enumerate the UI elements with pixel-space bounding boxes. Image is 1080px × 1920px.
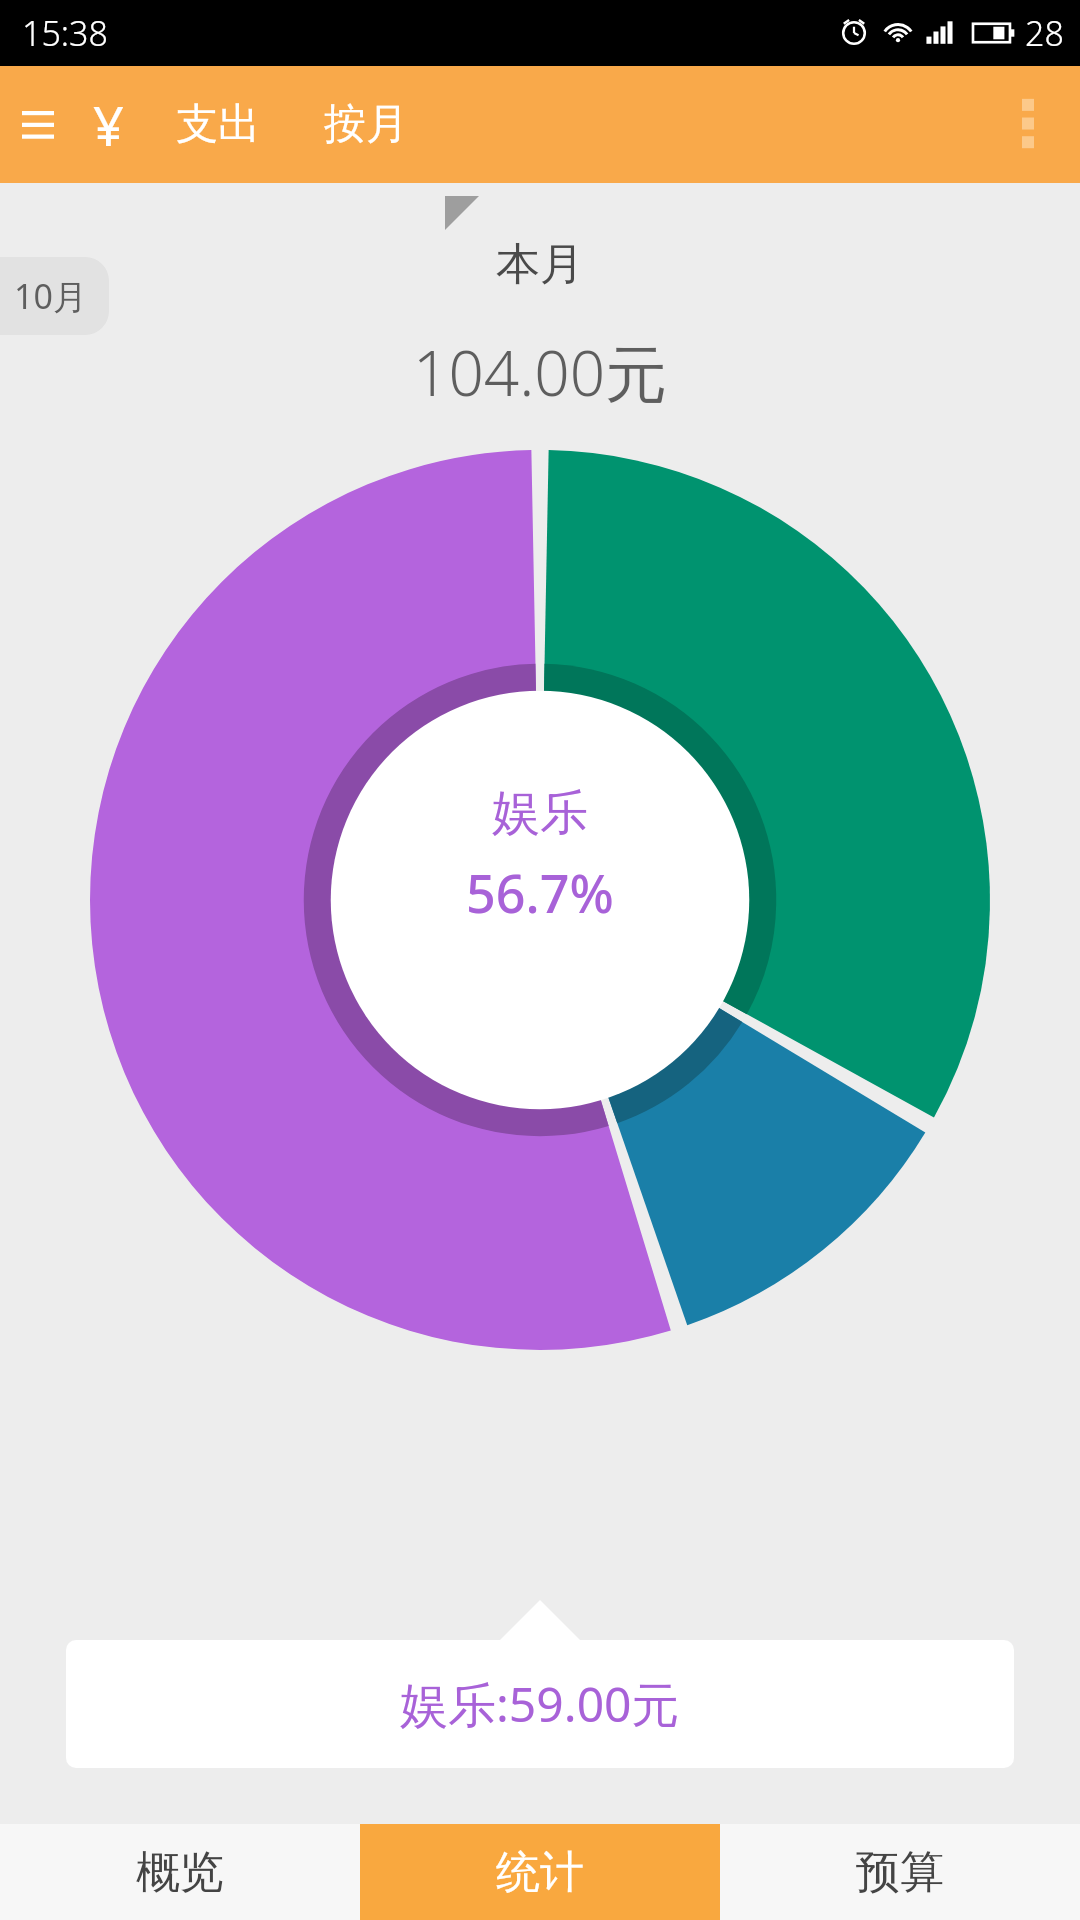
staticText: 娱乐 <box>492 783 588 843</box>
button[interactable]: 10月 <box>0 257 109 335</box>
staticText: 56.7% <box>466 857 614 928</box>
button[interactable]: 统计 <box>360 1824 720 1920</box>
button[interactable]: Currency <box>70 87 146 163</box>
staticText: 28 <box>1025 10 1064 56</box>
staticText: 统计 <box>496 1845 584 1900</box>
staticText: 10月 <box>14 273 87 319</box>
staticText: 104.00元 <box>413 330 668 415</box>
button[interactable]: 预算 <box>720 1824 1080 1920</box>
button[interactable]: 娱乐:59.00元 <box>66 1640 1014 1768</box>
button[interactable]: More options <box>992 89 1064 161</box>
staticText: 预算 <box>856 1845 944 1900</box>
button[interactable]: Expense pie chart <box>90 450 990 1350</box>
staticText: 概览 <box>136 1845 224 1900</box>
staticText: 本月 <box>496 237 584 292</box>
staticText: ¥ <box>93 88 124 162</box>
staticText: 娱乐:59.00元 <box>400 1671 680 1737</box>
button[interactable]: Menu <box>6 93 70 157</box>
staticText: 15:38 <box>22 10 108 56</box>
staticText: 支出 <box>176 98 260 151</box>
button[interactable]: 按月 <box>316 90 416 159</box>
staticText: 按月 <box>324 98 408 151</box>
button[interactable]: 支出 <box>168 90 268 159</box>
button[interactable]: 概览 <box>0 1824 360 1920</box>
